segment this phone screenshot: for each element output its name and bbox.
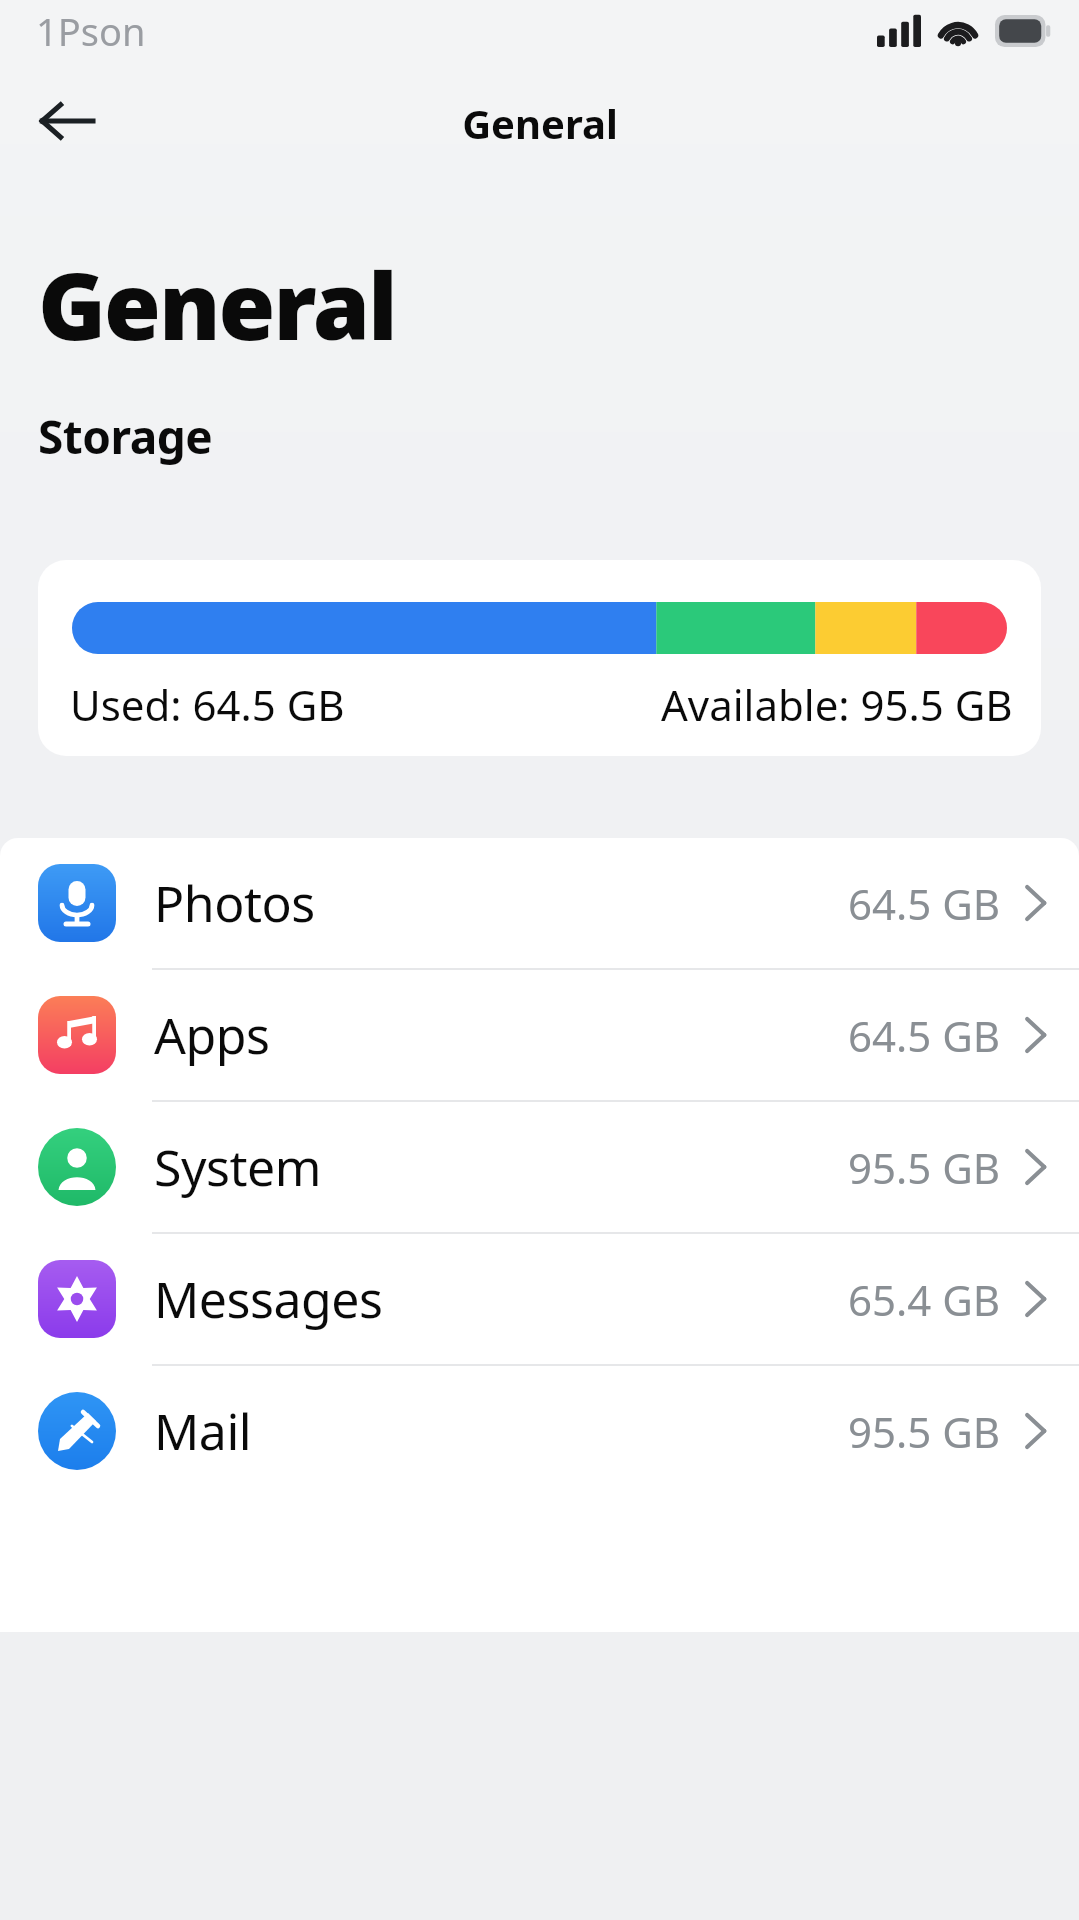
button[interactable]: Mail [0, 1366, 1079, 1496]
staticText: 1Pson [36, 5, 146, 57]
staticText: Apps [154, 1001, 270, 1069]
button[interactable]: System [0, 1102, 1079, 1232]
staticText: 64.5 GB [848, 875, 1001, 932]
staticText: System [154, 1133, 321, 1201]
staticText: 95.5 GB [848, 1403, 1001, 1460]
staticText: Mail [154, 1397, 252, 1465]
staticText: 95.5 GB [848, 1139, 1001, 1196]
staticText: Used: 64.5 GB [70, 676, 345, 733]
button[interactable]: Apps [0, 970, 1079, 1100]
staticText: 65.4 GB [848, 1271, 1001, 1328]
staticText: Messages [154, 1265, 383, 1333]
staticText: Photos [154, 869, 315, 937]
staticText: Available: 95.5 GB [661, 676, 1013, 733]
button[interactable]: Back [22, 77, 110, 165]
button[interactable]: Photos [0, 838, 1079, 968]
staticText: Storage [38, 405, 213, 468]
staticText: 64.5 GB [848, 1007, 1001, 1064]
staticText: General [462, 96, 618, 150]
button[interactable]: Messages [0, 1234, 1079, 1364]
staticText: General [38, 242, 396, 367]
